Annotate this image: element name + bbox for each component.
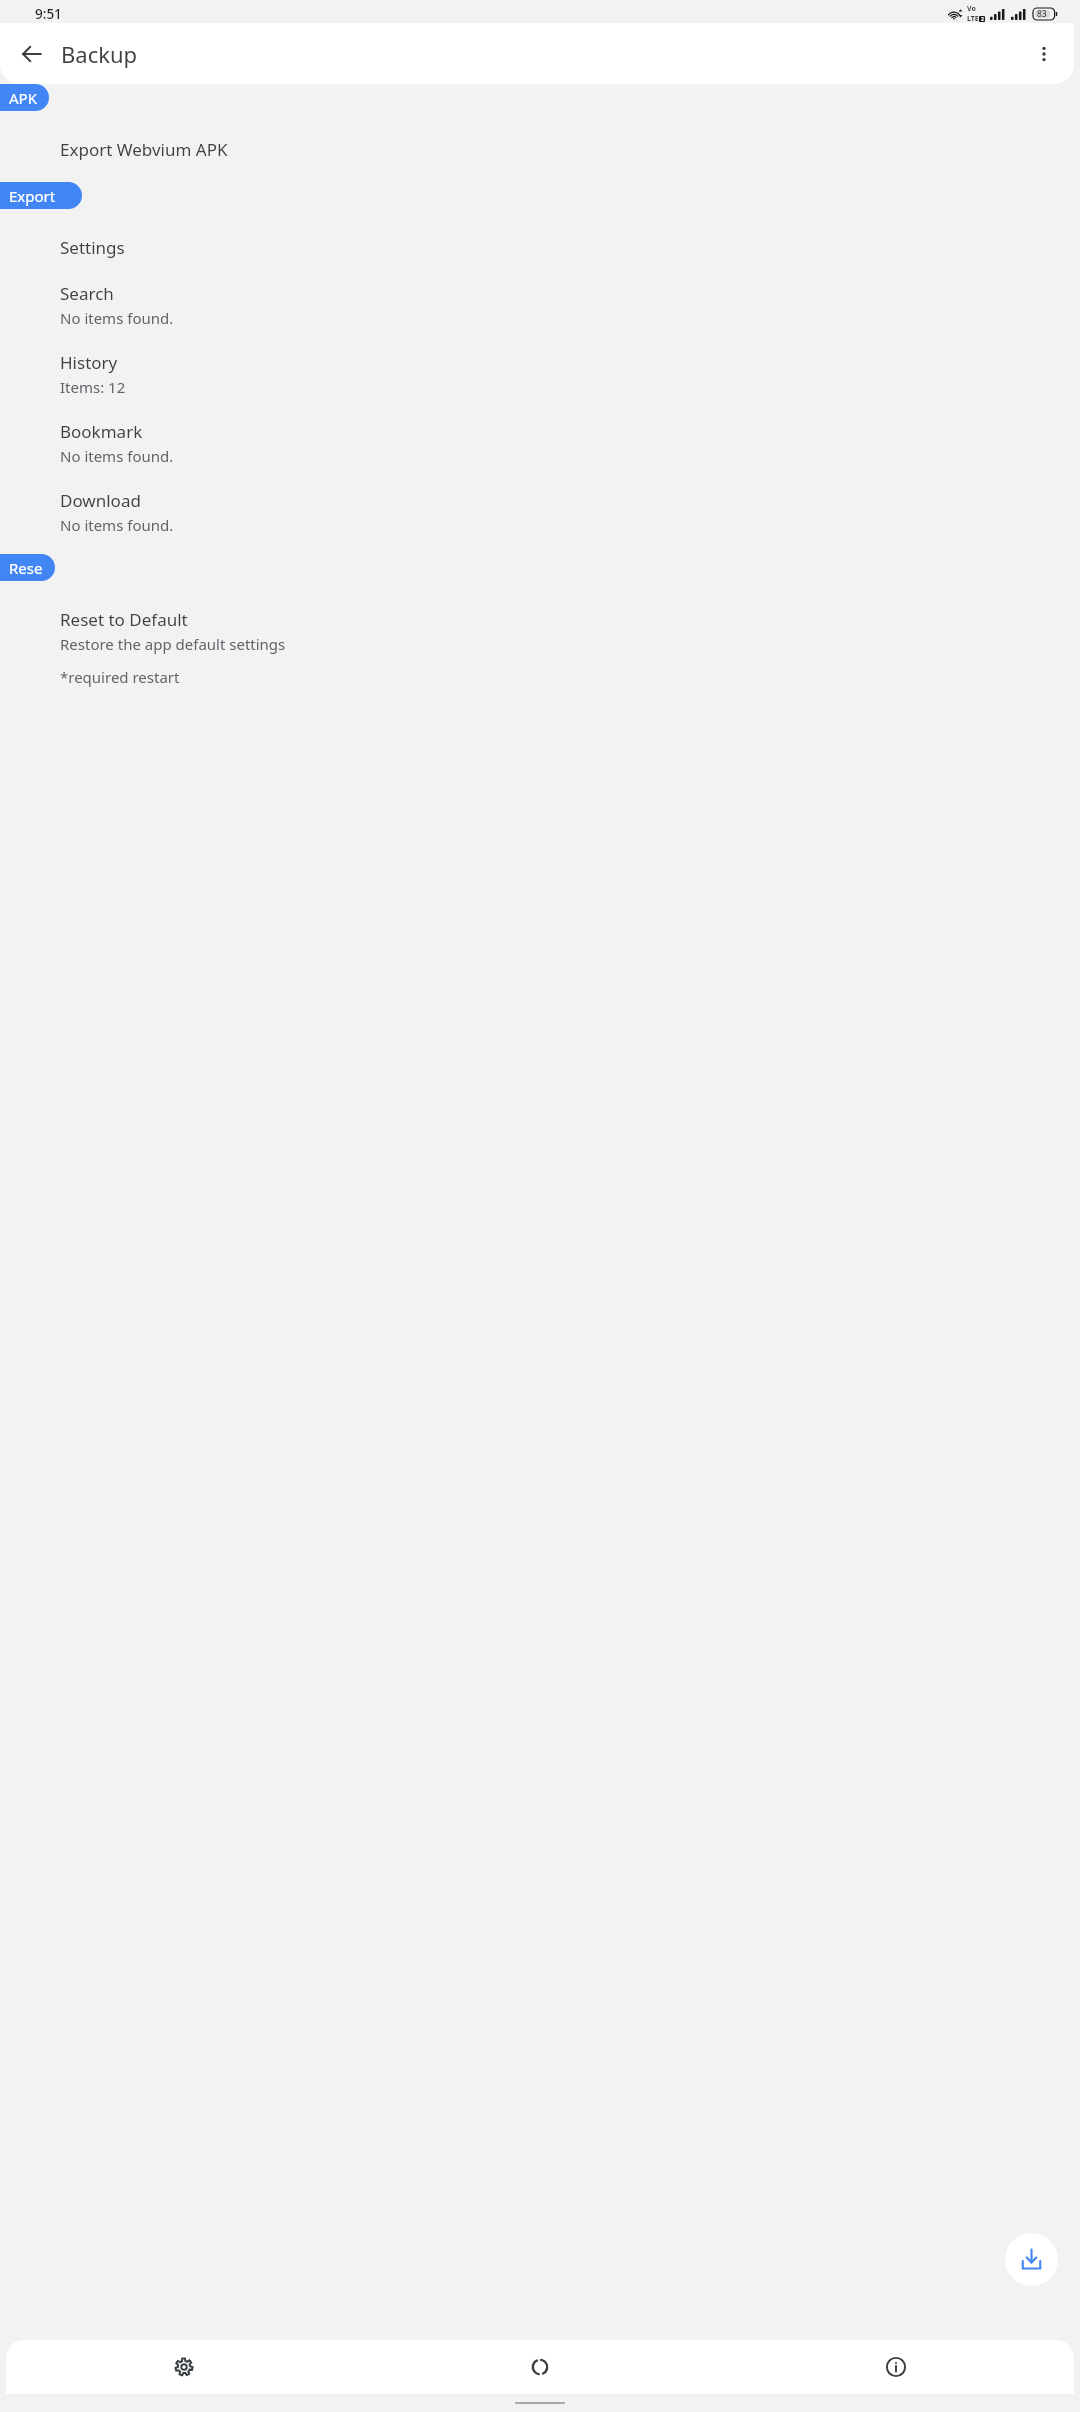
button[interactable]: Reset to Default <box>0 606 1080 689</box>
button[interactable]: Search <box>0 280 1080 330</box>
staticText: Restore the app default settings <box>60 634 286 654</box>
staticText: Reset <box>9 558 43 578</box>
staticText: No items found. <box>60 446 174 466</box>
button[interactable]: Back <box>10 32 54 76</box>
button[interactable]: History <box>0 349 1080 399</box>
staticText: Export Databases <box>9 186 70 206</box>
button[interactable]: Export Databases <box>0 182 82 209</box>
staticText: No items found. <box>60 308 174 328</box>
button[interactable]: APK <box>0 84 49 111</box>
staticText: Bookmark <box>60 420 143 443</box>
staticText: Vo <box>967 4 976 14</box>
staticText: No items found. <box>60 515 174 535</box>
staticText: Export Webvium APK <box>60 138 228 161</box>
button[interactable]: Settings <box>0 234 1080 261</box>
staticText: Search <box>60 282 114 305</box>
button[interactable]: Refresh <box>362 2340 718 2394</box>
staticText: LTE <box>967 14 979 24</box>
staticText: Download <box>60 489 141 512</box>
button[interactable]: Download <box>1005 2233 1058 2286</box>
button[interactable]: Bookmark <box>0 418 1080 468</box>
staticText: Backup <box>61 39 138 69</box>
staticText: 2 <box>981 16 984 22</box>
staticText: APK <box>9 88 37 108</box>
button[interactable]: More options <box>1022 32 1066 76</box>
staticText: History <box>60 351 118 374</box>
button[interactable]: Settings <box>6 2340 362 2394</box>
button[interactable]: Export Webvium APK <box>0 136 1080 163</box>
staticText: Settings <box>60 236 125 259</box>
staticText: *required restart <box>60 667 180 687</box>
staticText: 83 <box>1037 8 1047 20</box>
button[interactable]: Reset <box>0 554 55 581</box>
staticText: 9:51 <box>35 5 62 23</box>
button[interactable]: Download <box>0 487 1080 537</box>
staticText: Reset to Default <box>60 608 188 631</box>
staticText: Items: 12 <box>60 377 126 397</box>
button[interactable]: Info <box>718 2340 1074 2394</box>
